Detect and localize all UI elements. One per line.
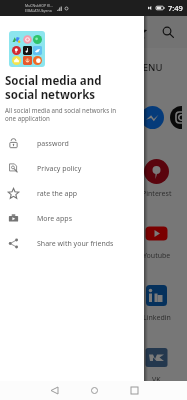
button[interactable]: Featured app — [83, 106, 106, 129]
button[interactable]: Back — [44, 381, 64, 400]
button[interactable]: More apps — [0, 206, 144, 231]
staticText: Linkedin — [143, 313, 171, 323]
staticText: MENU — [134, 61, 163, 74]
button[interactable]: Home — [84, 381, 104, 400]
staticText: All social media and social networks in … — [5, 106, 127, 122]
button[interactable]: Recents — [124, 381, 144, 400]
button[interactable]: Featured app — [170, 106, 187, 129]
staticText: Youtube — [143, 251, 171, 261]
button[interactable]: Share with your friends — [0, 231, 144, 256]
button[interactable]: Messenger — [65, 327, 126, 389]
staticText: More apps — [37, 214, 72, 224]
button[interactable]: Featured app — [141, 106, 164, 129]
staticText: rate the app — [37, 189, 78, 199]
button[interactable]: TikTok — [65, 203, 126, 265]
button[interactable]: Instagram — [3, 327, 65, 389]
staticText: MuCNskHOP fІІ… EІBALATiUbyena — [25, 3, 54, 13]
staticText: SOCIAL — [10, 61, 44, 74]
staticText: VK — [152, 375, 161, 385]
button[interactable]: Featured app — [0, 106, 19, 129]
button[interactable]: Featured app — [25, 106, 48, 129]
staticText: Privacy policy — [37, 164, 82, 174]
button[interactable]: Pinterest — [126, 141, 187, 203]
button[interactable]: Featured app — [54, 106, 77, 129]
staticText: Share with your friends — [37, 239, 114, 249]
button[interactable]: password — [0, 131, 144, 156]
button[interactable]: Twitter — [3, 203, 65, 265]
button[interactable]: Privacy policy — [0, 156, 144, 181]
staticText: Facebook — [18, 189, 50, 199]
button[interactable]: Favorites — [129, 21, 151, 43]
button[interactable]: Featured app — [112, 106, 135, 129]
button[interactable]: rate the app — [0, 181, 144, 206]
button[interactable]: VK — [126, 327, 187, 389]
staticText: password — [37, 139, 69, 149]
button[interactable]: Youtube — [126, 203, 187, 265]
staticText: Social media and social networks — [5, 73, 102, 103]
button[interactable]: Linkedin — [126, 265, 187, 327]
button[interactable]: Whatsapp — [65, 141, 126, 203]
button[interactable]: Search — [157, 21, 179, 43]
staticText: Pinterest — [142, 189, 172, 199]
button[interactable]: Facebook — [3, 141, 65, 203]
staticText: 7:49 — [168, 3, 183, 13]
